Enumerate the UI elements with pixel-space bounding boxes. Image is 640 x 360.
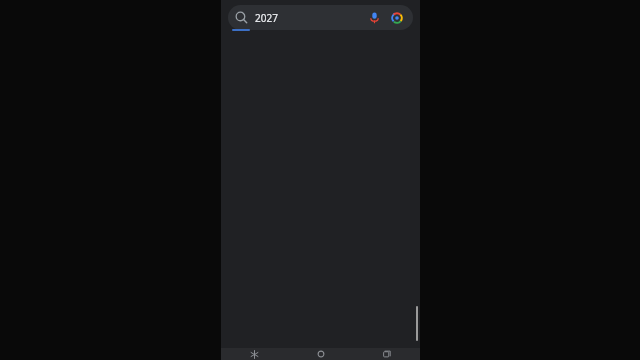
button[interactable]: 2027 xyxy=(228,5,413,30)
button[interactable]: Search with Google Lens xyxy=(387,8,406,27)
button[interactable]: Home xyxy=(288,348,354,360)
staticText: 2027 xyxy=(255,11,365,25)
button[interactable]: Voice search xyxy=(365,8,384,27)
button[interactable]: Recent apps xyxy=(354,348,420,360)
button[interactable]: Back xyxy=(221,348,288,360)
